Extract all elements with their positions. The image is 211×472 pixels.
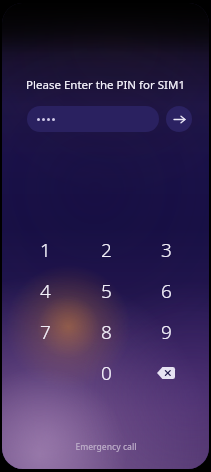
staticText: 0 — [101, 360, 112, 386]
staticText: Emergency call — [75, 441, 137, 453]
staticText: 2 — [101, 237, 112, 263]
button[interactable] — [27, 106, 159, 132]
button[interactable]: 2 — [76, 229, 136, 270]
button[interactable]: 6 — [136, 270, 196, 311]
staticText: 7 — [40, 319, 51, 345]
button[interactable]: 1 — [15, 229, 76, 270]
button[interactable]: 5 — [76, 270, 136, 311]
staticText: 4 — [40, 278, 51, 304]
staticText: 5 — [101, 278, 112, 304]
button[interactable]: 3 — [136, 229, 196, 270]
button[interactable]: 0 — [76, 352, 136, 393]
staticText: 9 — [161, 319, 172, 345]
staticText: Please Enter the PIN for SIM1 — [2, 77, 209, 93]
staticText: 1 — [40, 237, 51, 263]
staticText: 6 — [161, 278, 172, 304]
button[interactable]: Submit PIN — [166, 106, 192, 132]
button[interactable]: 4 — [15, 270, 76, 311]
button[interactable]: 8 — [76, 311, 136, 352]
staticText: 3 — [161, 237, 172, 263]
button[interactable]: 7 — [15, 311, 76, 352]
staticText: 8 — [101, 319, 112, 345]
button[interactable]: Emergency call — [65, 437, 147, 457]
button[interactable]: 9 — [136, 311, 196, 352]
button[interactable]: Backspace — [136, 352, 196, 393]
